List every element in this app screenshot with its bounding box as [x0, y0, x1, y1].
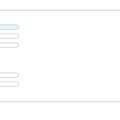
- button[interactable]: Inbox: [0, 24, 19, 30]
- button[interactable]: Starred: [0, 33, 19, 39]
- button[interactable]: Spam: [0, 81, 19, 87]
- button[interactable]: Sent: [0, 42, 19, 48]
- button[interactable]: Drafts: [0, 72, 19, 78]
